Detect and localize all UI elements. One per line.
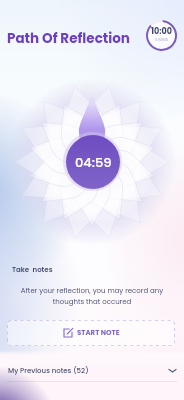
staticText: My Previous notes (52) [8,366,89,376]
staticText: Take notes [12,265,53,275]
button[interactable]: START NOTE [7,320,175,346]
staticText: START NOTE [77,328,120,338]
button[interactable]: My Previous notes (52) [8,360,176,381]
staticText: 04:59 [75,153,112,171]
staticText: 5 MINS [155,37,169,43]
button[interactable]: 04:59 [66,135,120,189]
button[interactable]: Session timer [146,20,177,51]
staticText: 10:00 [151,26,172,37]
staticText: Path Of Reflection [7,29,130,48]
staticText: After your reflection, you may record an… [16,286,168,307]
